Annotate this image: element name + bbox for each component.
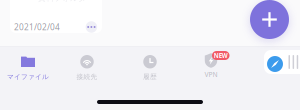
button[interactable]: 履歴: [121, 55, 179, 81]
staticText: マイファイル: [7, 73, 49, 81]
staticText: 履歴: [143, 73, 157, 81]
staticText: 接続先: [76, 73, 97, 81]
staticText: 資料フォルダ: [38, 0, 86, 3]
staticText: NEW: [214, 51, 228, 60]
button[interactable]: VPN: [182, 53, 240, 79]
button[interactable]: 接続先: [58, 55, 116, 81]
button[interactable]: Safari: [267, 56, 283, 72]
staticText: VPN: [204, 70, 217, 79]
staticText: 2021/02/04: [14, 21, 60, 33]
button[interactable]: マイファイル: [0, 55, 57, 81]
button[interactable]: More: [84, 20, 98, 34]
button[interactable]: New: [250, 0, 289, 39]
